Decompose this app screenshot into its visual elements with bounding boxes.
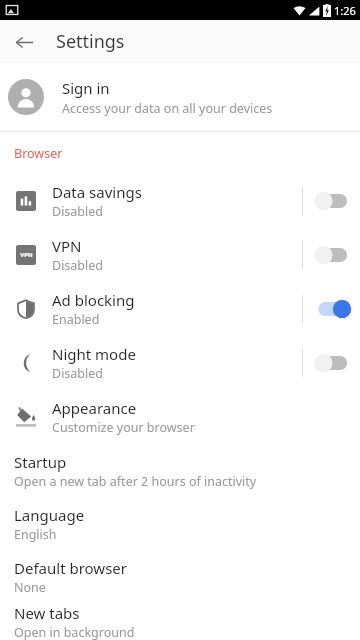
button[interactable]: New tabs: [0, 603, 360, 640]
staticText: Default browser: [14, 558, 127, 578]
staticText: Access your data on all your devices: [62, 100, 273, 117]
button[interactable]: VPN: [0, 228, 360, 282]
button[interactable]: Startup: [0, 444, 360, 497]
button[interactable]: Back: [8, 26, 40, 58]
button[interactable]: Night mode: [0, 336, 360, 390]
staticText: 1:26: [334, 3, 356, 18]
staticText: Open a new tab after 2 hours of inactivi…: [14, 473, 257, 490]
staticText: Open in background: [14, 624, 135, 640]
button[interactable]: Language: [0, 497, 360, 550]
staticText: Ad blocking: [52, 290, 135, 310]
staticText: None: [14, 579, 46, 596]
button[interactable]: VPN toggle: [303, 228, 360, 282]
staticText: VPN: [52, 236, 82, 256]
staticText: Disabled: [52, 257, 104, 274]
staticText: Data savings: [52, 182, 142, 202]
button[interactable]: Ad blocking toggle: [303, 282, 360, 336]
button[interactable]: Data savings toggle: [303, 174, 360, 228]
button[interactable]: Night mode toggle: [303, 336, 360, 390]
button[interactable]: Data savings: [0, 174, 360, 228]
button[interactable]: Sign in: [0, 63, 360, 131]
staticText: Disabled: [52, 203, 104, 220]
staticText: Startup: [14, 452, 67, 472]
staticText: Appearance: [52, 398, 137, 418]
button[interactable]: Ad blocking: [0, 282, 360, 336]
staticText: Settings: [56, 29, 125, 54]
staticText: Sign in: [62, 78, 110, 98]
staticText: Night mode: [52, 344, 136, 364]
staticText: Browser: [14, 145, 63, 162]
staticText: Customize your browser: [52, 419, 195, 436]
staticText: Enabled: [52, 311, 100, 328]
staticText: VPN: [20, 251, 33, 259]
button[interactable]: Appearance: [0, 390, 360, 444]
button[interactable]: Default browser: [0, 550, 360, 603]
staticText: English: [14, 526, 57, 543]
staticText: Disabled: [52, 365, 104, 382]
staticText: Language: [14, 505, 85, 525]
staticText: New tabs: [14, 603, 80, 623]
